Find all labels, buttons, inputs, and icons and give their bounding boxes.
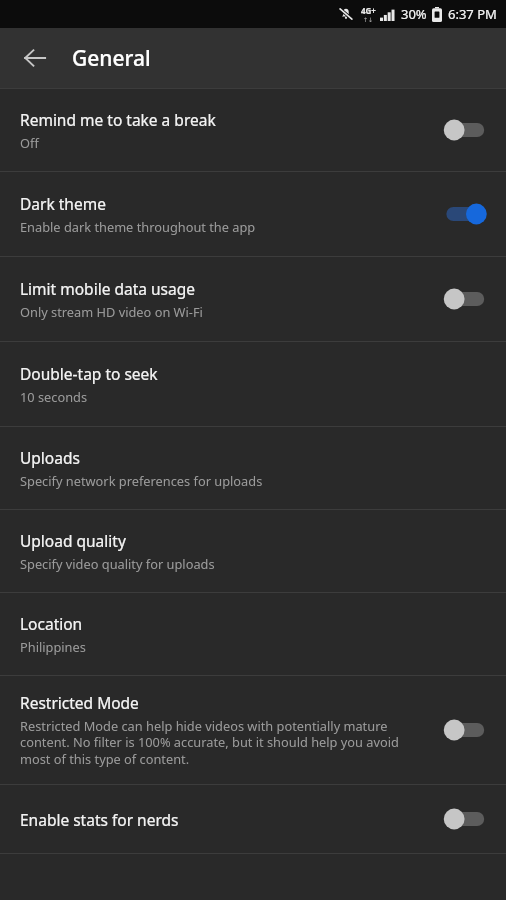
button[interactable]: Switch off — [438, 803, 492, 835]
button[interactable]: Dark theme — [0, 172, 506, 256]
button[interactable]: Location — [0, 593, 506, 675]
staticText: Specify video quality for uploads — [20, 555, 215, 572]
button[interactable]: Back — [11, 34, 59, 82]
staticText: Upload quality — [20, 530, 126, 551]
staticText: 6:37 PM — [448, 5, 497, 23]
staticText: Double-tap to seek — [20, 363, 158, 384]
staticText: ↑↓ — [363, 16, 374, 23]
button[interactable]: Switch on — [438, 198, 492, 230]
staticText: Off — [20, 134, 39, 151]
staticText: 10 seconds — [20, 388, 88, 405]
staticText: Only stream HD video on Wi-Fi — [20, 303, 203, 320]
button[interactable]: Enable stats for nerds — [0, 785, 506, 853]
staticText: Location — [20, 613, 83, 634]
button[interactable]: Upload quality — [0, 510, 506, 592]
button[interactable]: Double-tap to seek — [0, 342, 506, 426]
button[interactable]: Limit mobile data usage — [0, 257, 506, 341]
staticText: Specify network preferences for uploads — [20, 472, 263, 489]
button[interactable]: Switch off — [438, 114, 492, 146]
staticText: Remind me to take a break — [20, 109, 216, 130]
staticText: Limit mobile data usage — [20, 278, 195, 299]
button[interactable]: Switch off — [438, 283, 492, 315]
staticText: Restricted Mode can help hide videos wit… — [20, 717, 428, 768]
button[interactable]: Restricted Mode — [0, 676, 506, 784]
button[interactable]: Switch off — [438, 714, 492, 746]
staticText: 4G+ — [361, 5, 376, 16]
staticText: General — [72, 44, 151, 73]
button[interactable]: Uploads — [0, 427, 506, 509]
staticText: Enable stats for nerds — [20, 809, 179, 830]
staticText: Enable dark theme throughout the app — [20, 218, 256, 235]
button[interactable]: Remind me to take a break — [0, 89, 506, 171]
staticText: Restricted Mode — [20, 692, 139, 713]
staticText: Dark theme — [20, 193, 106, 214]
staticText: Uploads — [20, 447, 80, 468]
staticText: 30% — [401, 5, 427, 23]
staticText: Philippines — [20, 638, 86, 655]
